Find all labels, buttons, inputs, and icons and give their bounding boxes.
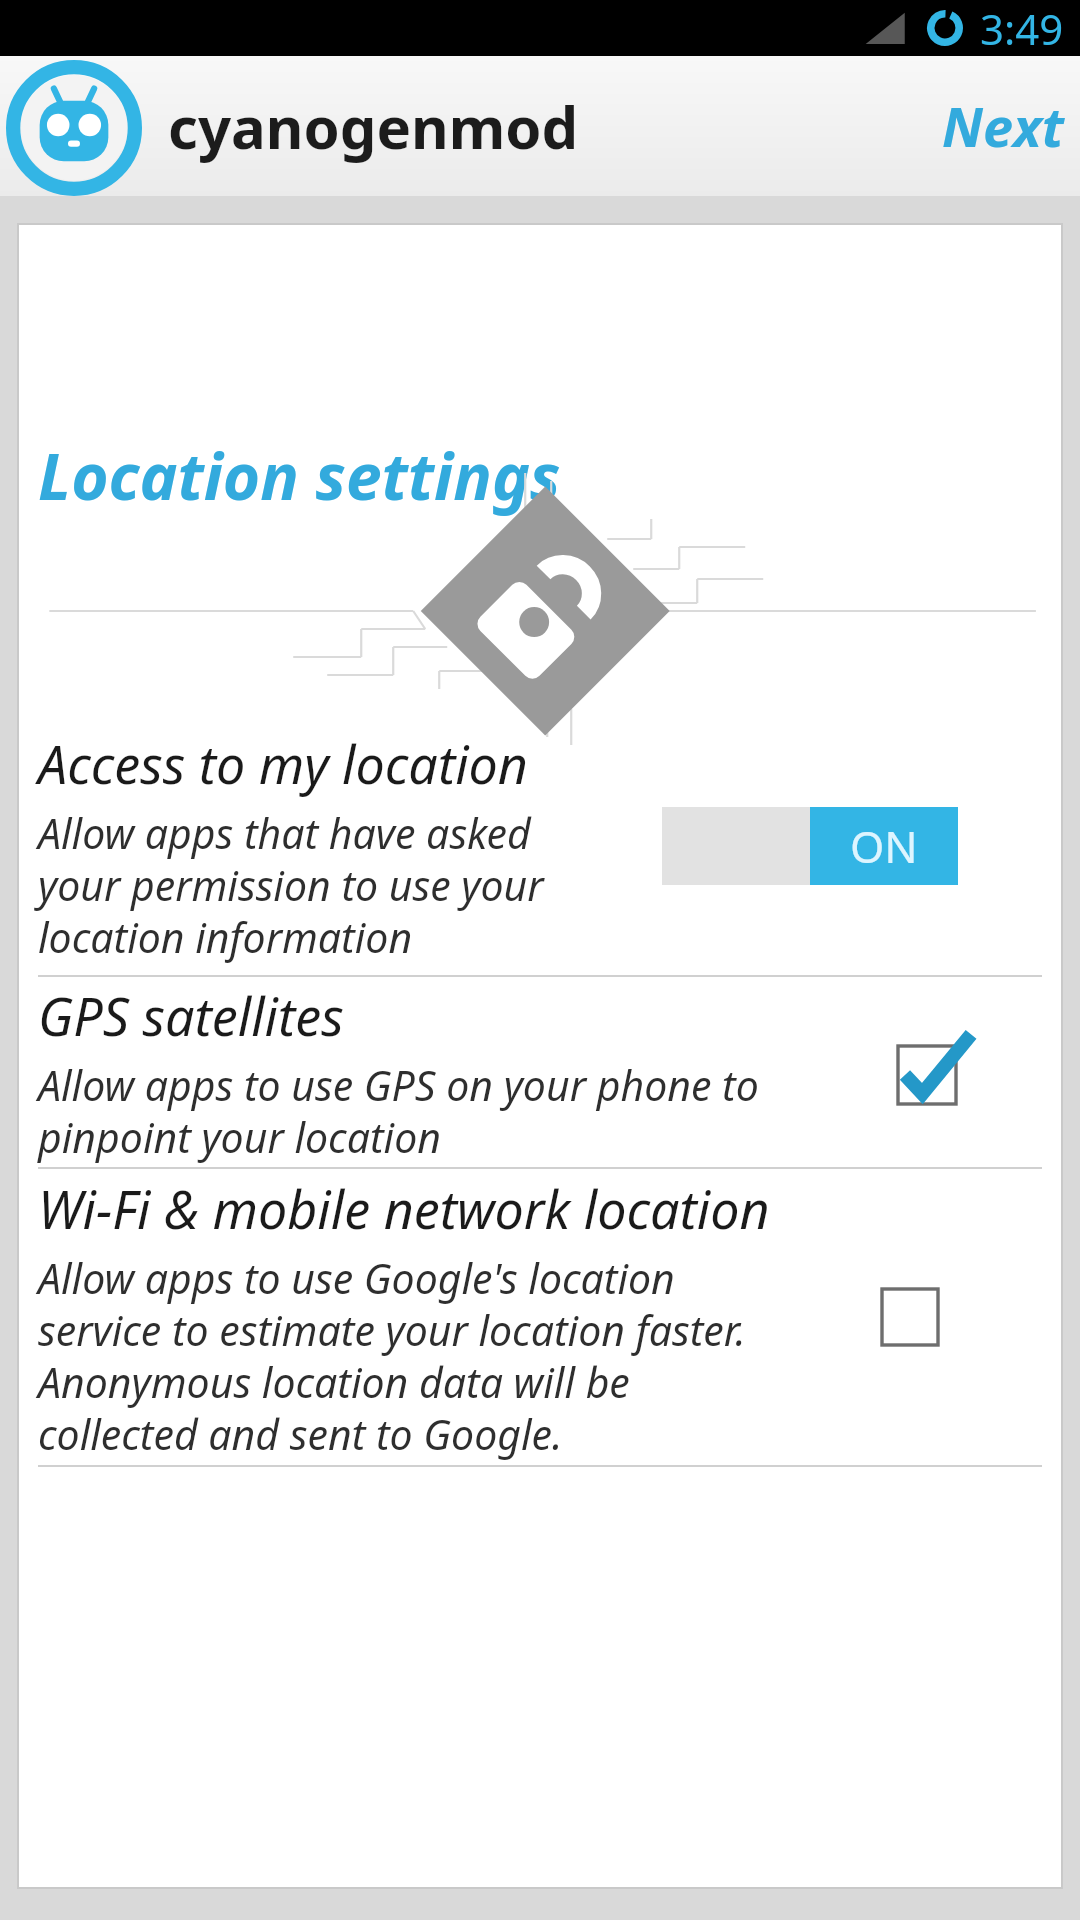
staticText: Location settings [38,432,561,519]
staticText: Allow apps that have asked your permissi… [38,805,578,965]
button[interactable]: Wi-Fi and mobile network location, unche… [860,1267,960,1367]
staticText: GPS satellites [38,980,344,1051]
staticText: 3:49 [980,0,1064,56]
staticText: Next [942,89,1064,163]
button[interactable]: Access to my location, on [662,807,958,885]
staticText: ON [850,816,918,876]
staticText: Wi-Fi & mobile network location [38,1173,770,1244]
button[interactable]: GPS satellites [18,977,1062,1167]
button[interactable]: GPS satellites, checked [890,1022,990,1122]
staticText: Access to my location [38,728,528,799]
button[interactable]: Wi-Fi & mobile network location [18,1169,1062,1465]
staticText: Allow apps to use Google's location serv… [38,1250,778,1462]
button[interactable]: Access to my location [18,717,1062,975]
staticText: cyanogenmod [168,87,579,166]
staticText: Allow apps to use GPS on your phone to p… [38,1057,838,1165]
button[interactable]: Next [926,71,1080,181]
